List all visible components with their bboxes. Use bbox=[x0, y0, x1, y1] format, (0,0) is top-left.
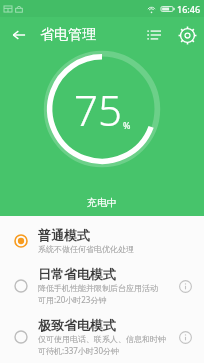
button[interactable]: Info bbox=[172, 324, 198, 350]
staticText: 仅可使用电话、联系人、信息和时钟 bbox=[38, 334, 166, 344]
staticText: 日常省电模式 bbox=[38, 266, 116, 282]
staticText: 可用:20小时23分钟 bbox=[38, 294, 107, 305]
staticText: 75 bbox=[74, 81, 122, 138]
button[interactable]: 极致省电模式 bbox=[0, 311, 204, 362]
staticText: 系统不做任何省电优化处理 bbox=[38, 244, 134, 254]
staticText: 充电中 bbox=[87, 196, 117, 209]
button[interactable]: Settings bbox=[170, 18, 204, 52]
staticText: 普通模式 bbox=[38, 227, 90, 243]
staticText: % bbox=[123, 119, 131, 131]
staticText: 省电管理 bbox=[40, 26, 96, 44]
button[interactable]: Info bbox=[172, 273, 198, 299]
button[interactable]: 普通模式 bbox=[0, 221, 204, 260]
button[interactable]: Back bbox=[0, 17, 38, 52]
staticText: 可待机:337小时30分钟 bbox=[38, 345, 120, 356]
staticText: 降低手机性能并限制后台应用活动 bbox=[38, 283, 158, 293]
staticText: 16:46 bbox=[177, 3, 201, 15]
staticText: 极致省电模式 bbox=[38, 317, 116, 333]
button[interactable]: List bbox=[138, 19, 170, 51]
button[interactable]: 日常省电模式 bbox=[0, 260, 204, 311]
